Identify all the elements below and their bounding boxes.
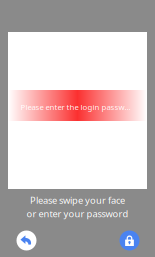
staticText: or enter your password bbox=[26, 207, 128, 220]
button[interactable]: Back bbox=[16, 230, 36, 250]
button[interactable]: Enter password bbox=[119, 230, 139, 250]
staticText: Please enter the login password bbox=[20, 102, 134, 112]
staticText: Please swipe your face bbox=[30, 194, 125, 206]
